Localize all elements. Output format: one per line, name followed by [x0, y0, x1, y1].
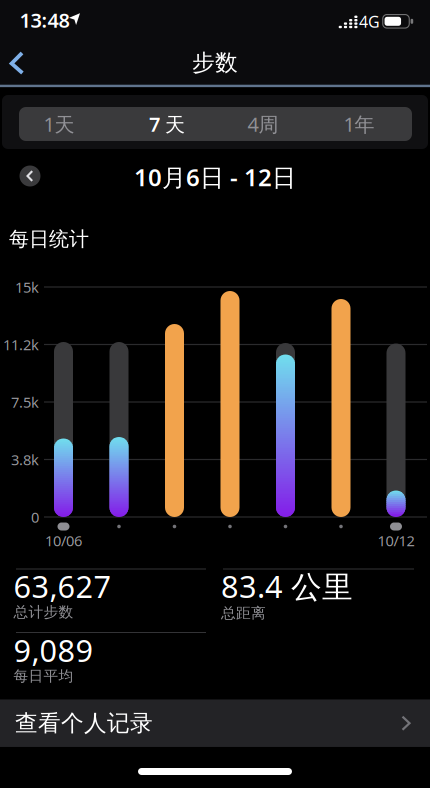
staticText: 15k	[15, 277, 39, 297]
staticText: 每日平均	[13, 667, 73, 685]
staticText: 10/06	[45, 531, 82, 550]
staticText: 9,089	[13, 630, 93, 670]
staticText: 1年	[343, 111, 374, 137]
staticText: 步数	[192, 49, 238, 77]
button[interactable]: 7 天	[118, 107, 216, 141]
staticText: 3.8k	[11, 450, 39, 469]
staticText: 13:48	[19, 7, 69, 33]
staticText: 0	[31, 507, 39, 527]
staticText: 每日统计	[9, 227, 89, 251]
staticText: 总计步数	[13, 603, 73, 621]
staticText: 4G	[359, 11, 380, 32]
staticText: 查看个人记录	[15, 709, 153, 737]
staticText: 10/12	[377, 531, 414, 550]
button[interactable]: 1天	[10, 107, 108, 141]
button[interactable]: 上一周	[19, 165, 40, 186]
button[interactable]: 查看个人记录	[0, 699, 430, 747]
staticText: 11.2k	[3, 335, 39, 354]
staticText: 7.5k	[11, 392, 39, 412]
staticText: 总距离	[221, 604, 266, 622]
button[interactable]: 1年	[310, 107, 408, 141]
staticText: 10月6日 - 12日	[134, 161, 296, 193]
staticText: 4周	[247, 111, 278, 137]
button[interactable]: 返回	[0, 41, 44, 85]
button[interactable]: 4周	[214, 107, 312, 141]
staticText: 63,627	[13, 566, 111, 606]
staticText: 1天	[43, 111, 74, 137]
staticText: 83.4 公里	[221, 566, 353, 606]
staticText: 7 天	[149, 111, 185, 137]
